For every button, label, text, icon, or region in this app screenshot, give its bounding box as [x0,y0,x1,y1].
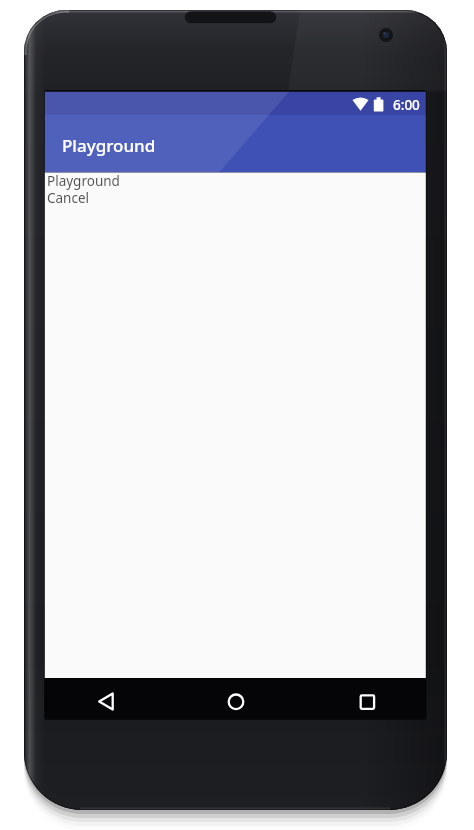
staticText: 6:00 [393,96,420,114]
staticText: Cancel [47,189,90,207]
button[interactable] [337,678,397,718]
staticText: Playground [47,172,120,190]
button[interactable] [76,678,136,718]
staticText: Playground [62,134,156,157]
button[interactable] [206,678,266,718]
